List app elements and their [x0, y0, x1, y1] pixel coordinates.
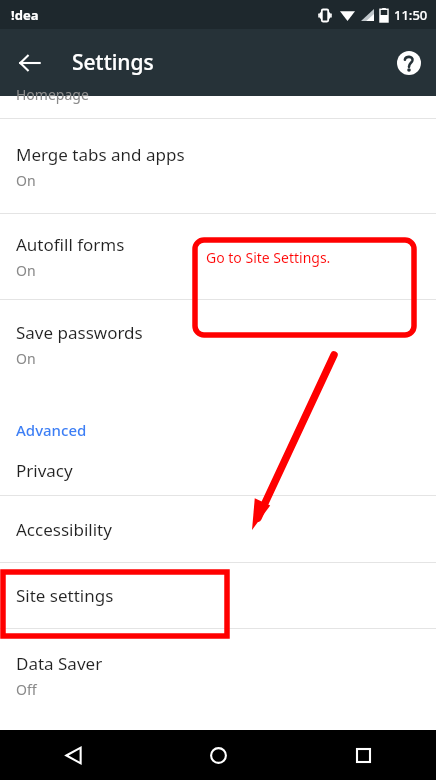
- button[interactable]: Accessibility: [0, 496, 436, 562]
- button[interactable]: Merge tabs and apps: [0, 119, 436, 213]
- staticText: Save passwords: [16, 321, 143, 344]
- staticText: On: [16, 349, 36, 368]
- staticText: Site settings: [16, 584, 114, 607]
- staticText: Autofill forms: [16, 233, 125, 256]
- button[interactable]: Data Saver: [0, 629, 436, 721]
- button[interactable]: Home: [146, 730, 291, 780]
- staticText: Off: [16, 680, 37, 699]
- button[interactable]: Site settings: [0, 563, 436, 628]
- staticText: Go to Site Settings.: [206, 248, 331, 267]
- staticText: 11:50: [394, 6, 428, 24]
- staticText: Data Saver: [16, 652, 103, 675]
- staticText: Settings: [72, 48, 154, 77]
- staticText: On: [16, 261, 36, 280]
- button[interactable]: Recent apps: [291, 730, 436, 780]
- button[interactable]: Autofill forms: [0, 214, 436, 299]
- staticText: Merge tabs and apps: [16, 143, 185, 166]
- staticText: On: [16, 171, 36, 190]
- staticText: Accessibility: [16, 518, 112, 541]
- staticText: !dea: [11, 6, 39, 24]
- staticText: Homepage: [16, 85, 89, 104]
- button[interactable]: Save passwords: [0, 300, 436, 389]
- staticText: Advanced: [16, 420, 87, 440]
- button[interactable]: Privacy: [0, 446, 436, 495]
- staticText: Privacy: [16, 459, 73, 482]
- button[interactable]: Help and feedback: [385, 39, 433, 87]
- button[interactable]: Navigate up: [6, 39, 54, 87]
- button[interactable]: Back: [0, 730, 146, 780]
